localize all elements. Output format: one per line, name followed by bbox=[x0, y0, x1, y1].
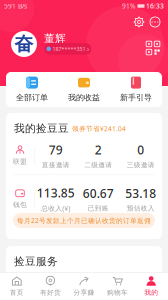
staticText: 79 bbox=[49, 142, 63, 158]
button[interactable]: 我的收益 bbox=[58, 77, 110, 102]
button[interactable]: 我的 bbox=[134, 272, 168, 300]
button[interactable]: 有好货 bbox=[34, 272, 67, 300]
button[interactable]: 0 bbox=[119, 142, 162, 169]
button[interactable]: 分享赚 bbox=[67, 272, 101, 300]
staticText: 首页 bbox=[10, 288, 24, 297]
button[interactable]: 2 bbox=[77, 142, 119, 169]
staticText: 二级邀请 bbox=[84, 161, 112, 169]
button[interactable]: 53.18 bbox=[119, 185, 162, 212]
staticText: 三级邀请 bbox=[127, 161, 155, 169]
button[interactable]: 首页 bbox=[0, 272, 34, 300]
staticText: 有好货 bbox=[40, 288, 61, 297]
staticText: 53.18 bbox=[125, 185, 156, 201]
staticText: 已到账 bbox=[88, 204, 109, 212]
staticText: 我的收益 bbox=[68, 93, 100, 102]
staticText: 113.85 bbox=[37, 185, 75, 201]
button[interactable]: Settings bbox=[134, 17, 144, 27]
button[interactable]: 新手引导 bbox=[110, 77, 162, 102]
staticText: 领券节省¥241.04 bbox=[72, 124, 126, 133]
staticText: 捡豆服务 bbox=[14, 255, 58, 268]
staticText: 我的 bbox=[144, 288, 158, 297]
staticText: 联盟 bbox=[13, 157, 27, 166]
button[interactable]: 钱包 bbox=[6, 189, 34, 209]
button[interactable]: 187*****351 bbox=[44, 43, 91, 55]
button[interactable]: 79 bbox=[34, 142, 77, 169]
staticText: 187*****351 bbox=[52, 45, 85, 52]
staticText: 总收入(¥) bbox=[41, 204, 70, 213]
staticText: › bbox=[87, 44, 89, 53]
staticText: 全部订单 bbox=[16, 93, 48, 102]
staticText: 奋 bbox=[14, 32, 33, 55]
staticText: 钱包 bbox=[13, 201, 27, 209]
button[interactable]: QR code bbox=[146, 41, 160, 55]
staticText: 60.67 bbox=[83, 185, 114, 201]
staticText: 董辉 bbox=[44, 32, 66, 45]
staticText: 2 bbox=[95, 142, 102, 158]
staticText: 591 B/s bbox=[4, 2, 27, 10]
button[interactable]: 联盟 bbox=[6, 145, 34, 166]
button[interactable]: 60.67 bbox=[77, 185, 119, 212]
button[interactable]: Messages bbox=[150, 17, 160, 27]
staticText: 分享赚 bbox=[73, 288, 94, 297]
staticText: 新手引导 bbox=[120, 93, 152, 102]
staticText: 每月22号发款上个月已确认收货的订单返佣 bbox=[17, 216, 151, 225]
button[interactable]: 购物车 bbox=[101, 272, 134, 300]
staticText: 购物车 bbox=[107, 288, 128, 297]
staticText: 直接邀请 bbox=[42, 161, 70, 169]
button[interactable]: 113.85 bbox=[34, 185, 77, 213]
staticText: 16:33 bbox=[146, 2, 164, 10]
button[interactable]: 全部订单 bbox=[6, 77, 58, 102]
staticText: 0 bbox=[137, 142, 144, 158]
staticText: 91% bbox=[122, 2, 136, 10]
staticText: 预估收入 bbox=[127, 204, 155, 212]
staticText: 我的捡豆豆 bbox=[14, 122, 69, 135]
